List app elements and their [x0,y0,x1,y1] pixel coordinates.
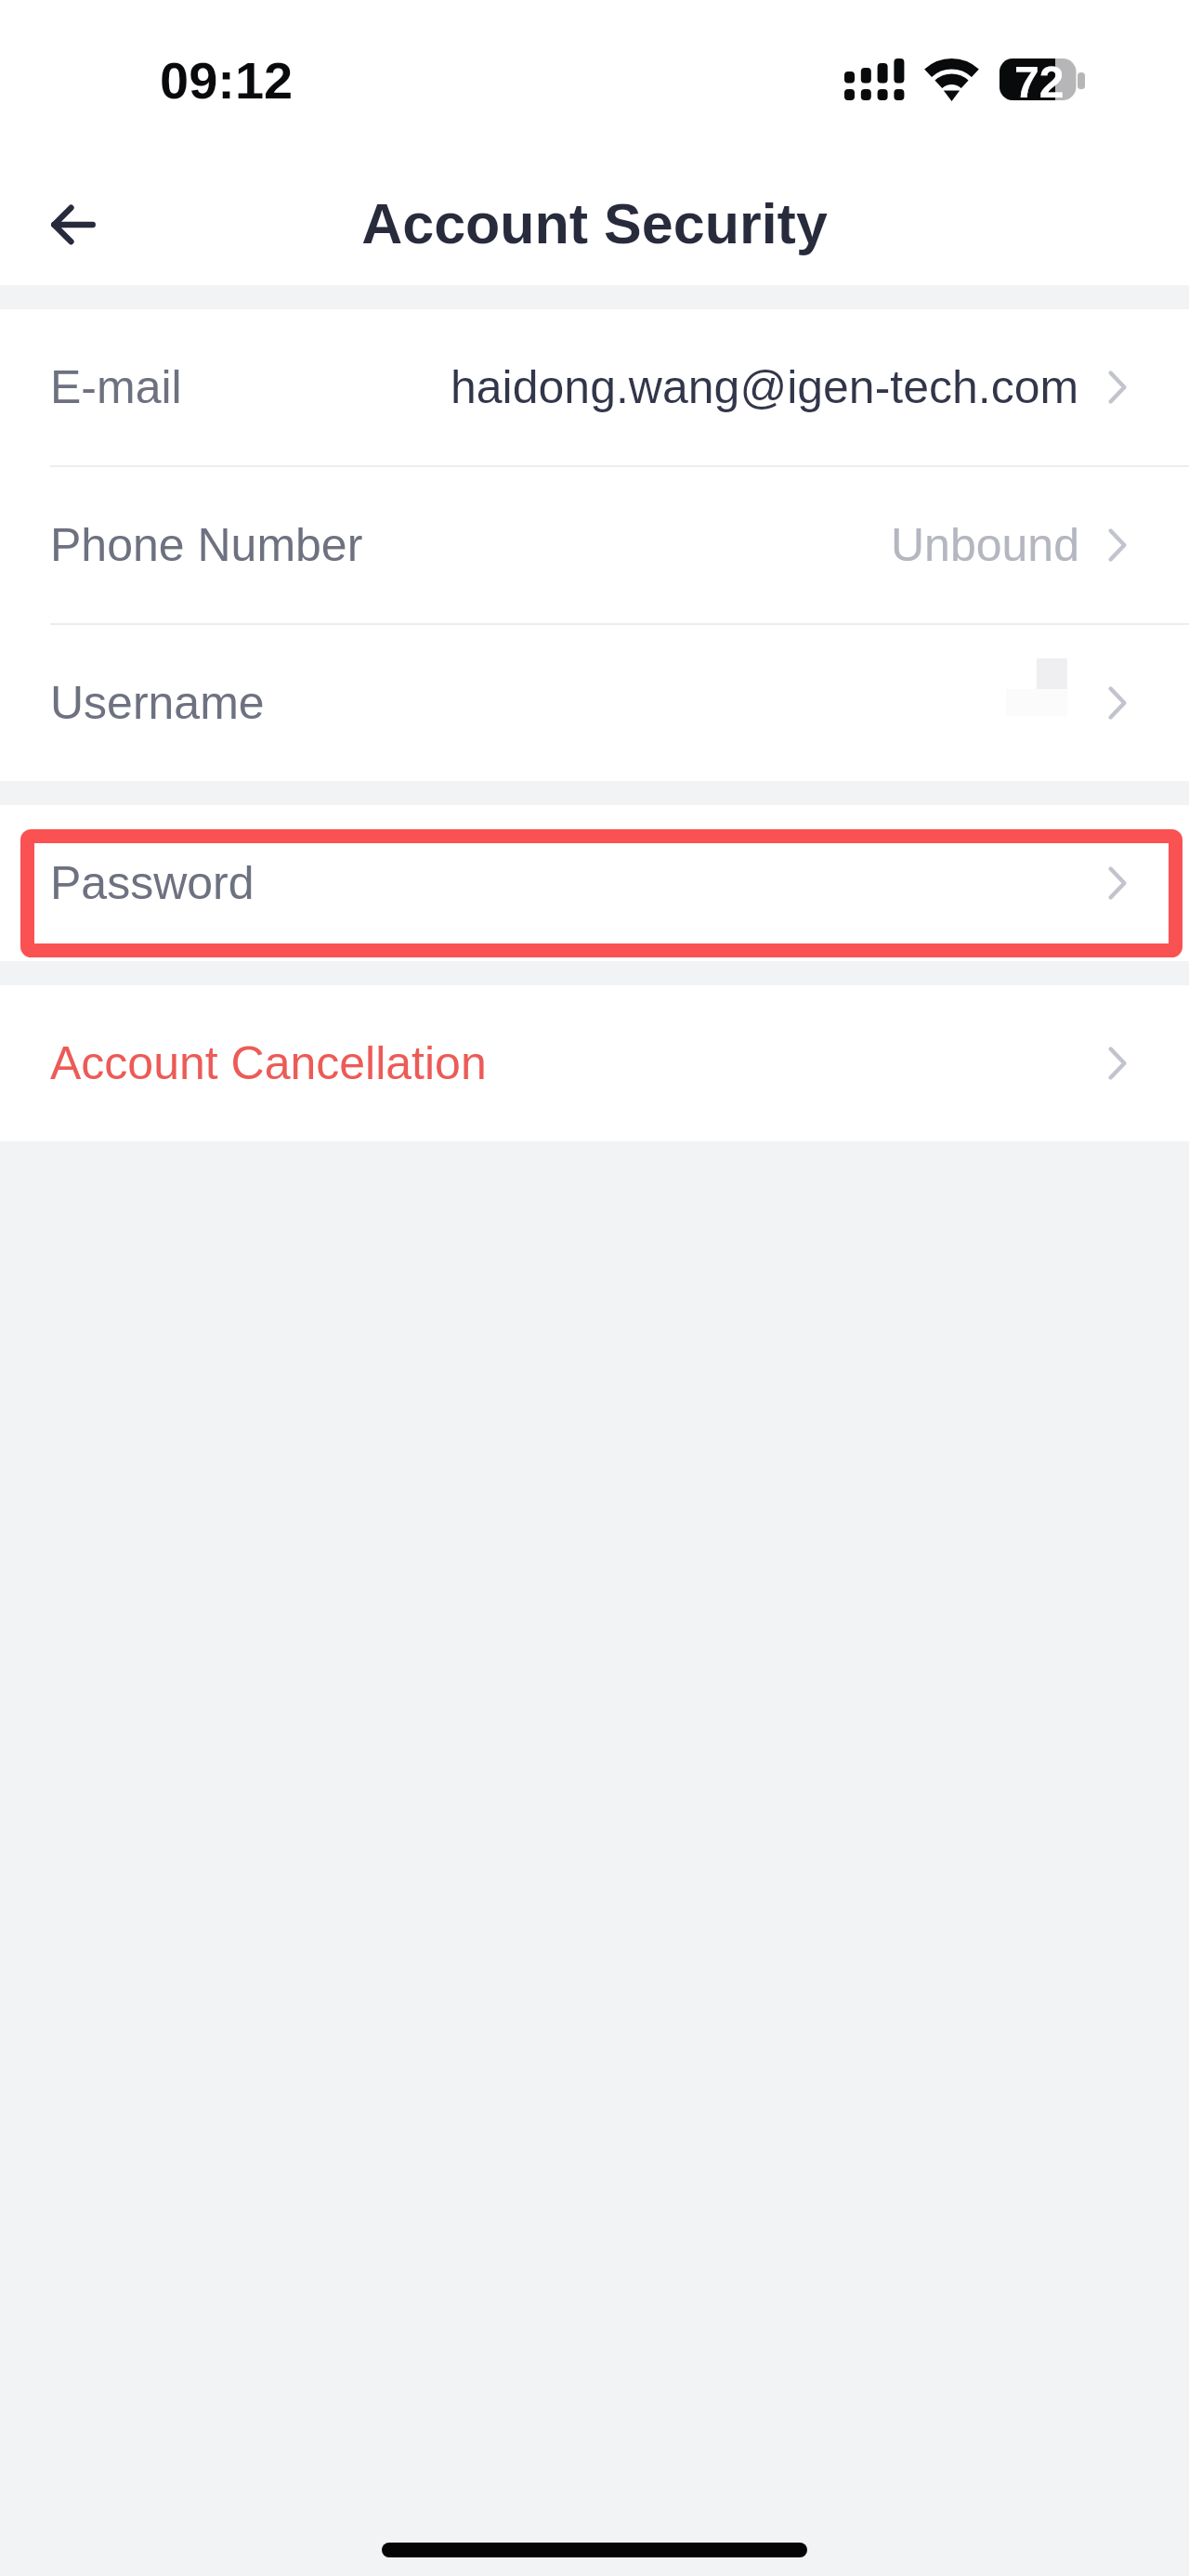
button[interactable]: Account Cancellation [0,985,1189,1141]
staticText: Account Cancellation [50,1037,487,1089]
button[interactable]: Password [0,805,1189,961]
button[interactable]: Back [22,174,124,276]
staticText: E-mail [50,361,182,413]
staticText: Unbound [891,519,1079,571]
staticText: Phone Number [50,519,363,571]
button[interactable]: Username [0,625,1189,781]
staticText: Username [50,677,265,729]
staticText: Account Security [361,192,828,255]
button[interactable]: Phone Number [0,467,1189,623]
button[interactable]: E-mail [0,309,1189,465]
staticText: 72 [1014,58,1065,99]
staticText: Password [50,857,255,909]
staticText: haidong.wang@igen-tech.com [451,361,1079,413]
staticText: 09:12 [160,51,294,110]
